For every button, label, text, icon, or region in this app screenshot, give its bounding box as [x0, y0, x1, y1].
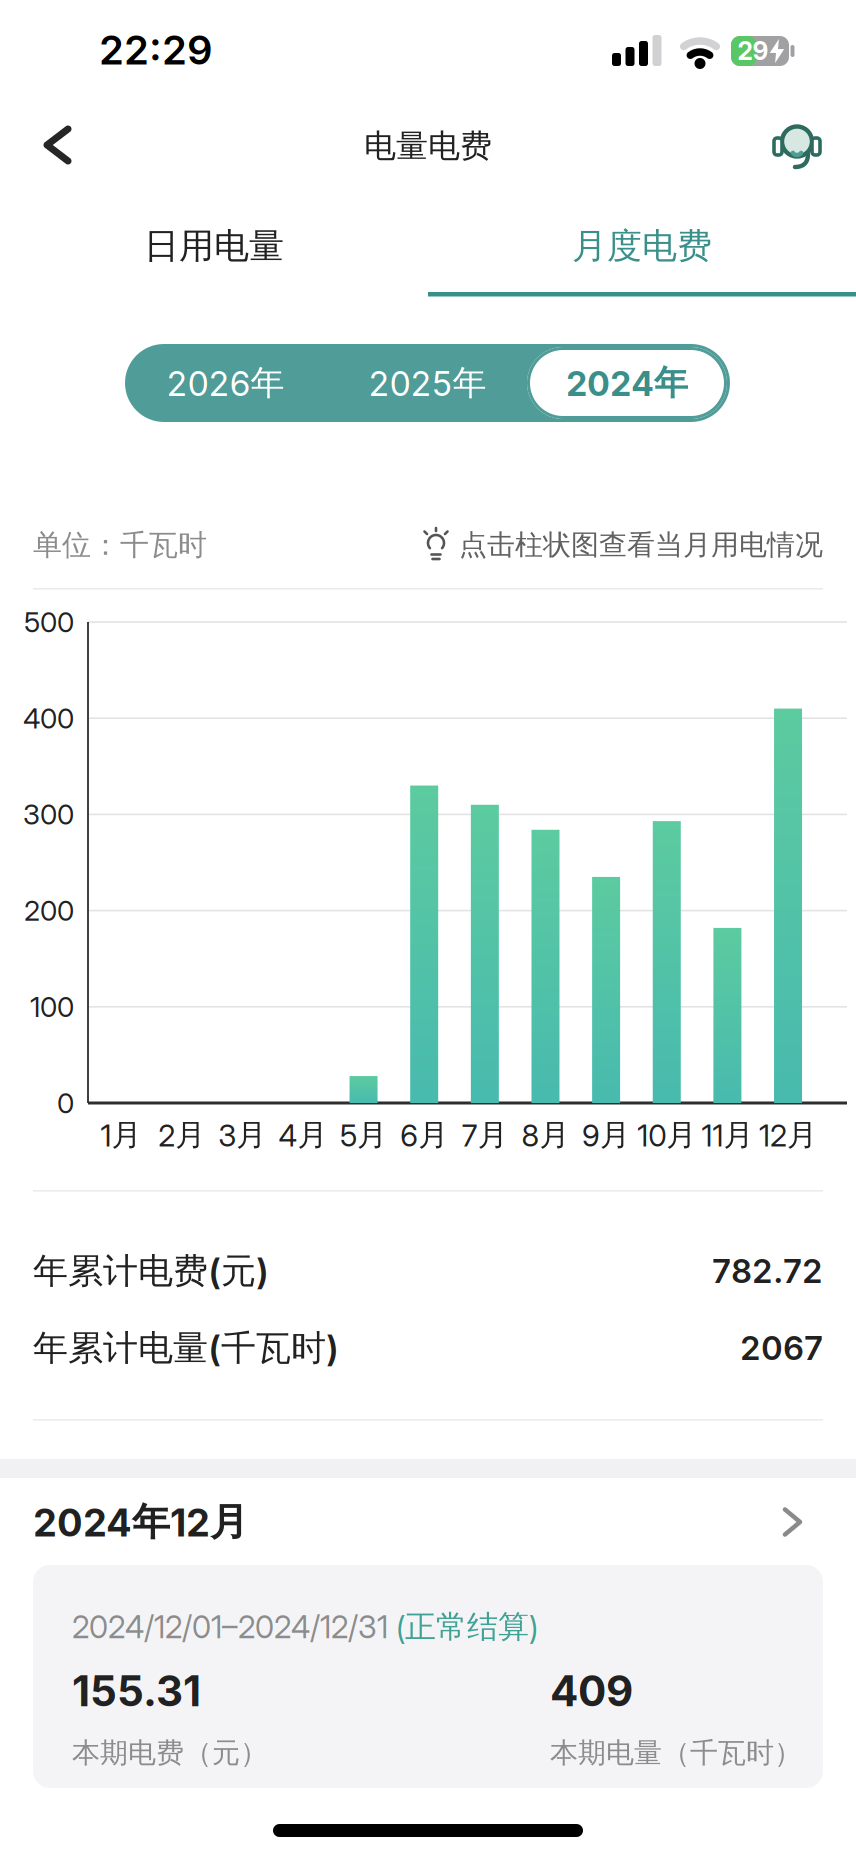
- button[interactable]: 6月: [410, 785, 438, 1103]
- staticText: 年累计电量(千瓦时): [33, 1326, 339, 1369]
- button[interactable]: 2026年: [125, 344, 326, 422]
- staticText: 本期电量（千瓦时）: [550, 1736, 802, 1770]
- button[interactable]: 2024年: [527, 347, 727, 419]
- staticText: 155.31: [72, 1666, 201, 1716]
- staticText: 1月: [100, 1117, 141, 1153]
- staticText: 日用电量: [144, 224, 284, 267]
- staticText: 7月: [462, 1117, 508, 1153]
- staticText: 2026年: [166, 362, 284, 404]
- button[interactable]: 月度电费: [428, 204, 856, 296]
- staticText: 300: [23, 798, 74, 831]
- staticText: 3月: [218, 1117, 266, 1153]
- staticText: 9月: [582, 1117, 630, 1153]
- button[interactable]: 2024年12月: [33, 1492, 823, 1552]
- staticText: 点击柱状图查看当月用电情况: [451, 528, 823, 562]
- staticText: 5月: [340, 1117, 387, 1153]
- button[interactable]: 11月: [713, 928, 741, 1103]
- button[interactable]: 9月: [592, 877, 620, 1103]
- staticText: 单位：千瓦时: [33, 527, 207, 563]
- button[interactable]: 5月: [350, 1076, 378, 1103]
- button[interactable]: 日用电量: [0, 204, 428, 288]
- staticText: 电量电费: [364, 126, 492, 166]
- staticText: 12月: [759, 1117, 817, 1153]
- staticText: (正常结算): [396, 1608, 538, 1646]
- staticText: 100: [30, 990, 74, 1023]
- staticText: 29: [737, 36, 768, 66]
- staticText: 2月: [158, 1117, 205, 1153]
- staticText: 500: [24, 605, 74, 638]
- staticText: 月度电费: [572, 224, 712, 267]
- button[interactable]: 2025年: [327, 344, 528, 422]
- button[interactable]: 返回: [33, 115, 82, 175]
- staticText: 11月: [701, 1117, 753, 1153]
- staticText: 22:29: [99, 26, 213, 74]
- staticText: 本期电费（元）: [72, 1736, 268, 1770]
- staticText: 10月: [637, 1117, 696, 1153]
- button[interactable]: 8月: [531, 830, 559, 1103]
- staticText: 782.72: [712, 1251, 823, 1290]
- staticText: 409: [550, 1666, 633, 1716]
- staticText: 年累计电费(元): [33, 1249, 269, 1292]
- button[interactable]: 联系客服: [773, 121, 821, 171]
- button[interactable]: 12月: [774, 709, 802, 1103]
- staticText: 8月: [521, 1117, 569, 1153]
- staticText: 200: [24, 894, 74, 927]
- staticText: 400: [23, 702, 74, 735]
- staticText: 2067: [740, 1328, 823, 1367]
- button[interactable]: 2024/12/01–2024/12/31: [33, 1565, 823, 1779]
- staticText: 2024年12月: [33, 1499, 248, 1545]
- staticText: 4月: [278, 1117, 327, 1153]
- staticText: 0: [57, 1086, 74, 1119]
- staticText: 2024年: [566, 362, 688, 404]
- button[interactable]: 10月: [653, 821, 681, 1103]
- staticText: 2025年: [368, 362, 486, 404]
- staticText: 6月: [400, 1117, 448, 1153]
- button[interactable]: 7月: [471, 805, 499, 1103]
- staticText: 2024/12/01–2024/12/31: [72, 1609, 396, 1645]
